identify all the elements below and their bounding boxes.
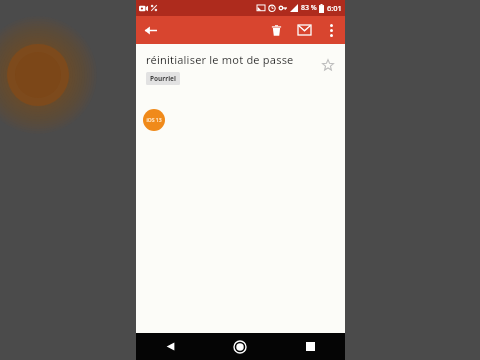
staticText: 6:01 xyxy=(327,3,342,13)
button[interactable]: Back xyxy=(136,333,205,360)
button[interactable]: More options xyxy=(318,17,344,43)
staticText: 83 % xyxy=(301,3,317,13)
button[interactable]: Star xyxy=(315,52,341,78)
button[interactable]: Pourriel xyxy=(146,72,180,85)
staticText: Pourriel xyxy=(150,74,176,83)
staticText: iOS 13 xyxy=(146,117,162,124)
button[interactable]: Home xyxy=(205,333,275,360)
button[interactable]: Mark as unread xyxy=(290,16,318,44)
staticText: réinitialiser le mot de passe xyxy=(146,52,294,67)
button[interactable]: Delete xyxy=(262,16,290,44)
button[interactable]: iOS 13 xyxy=(143,109,165,131)
button[interactable]: Back xyxy=(136,16,164,44)
button[interactable]: Recent apps xyxy=(275,333,345,360)
